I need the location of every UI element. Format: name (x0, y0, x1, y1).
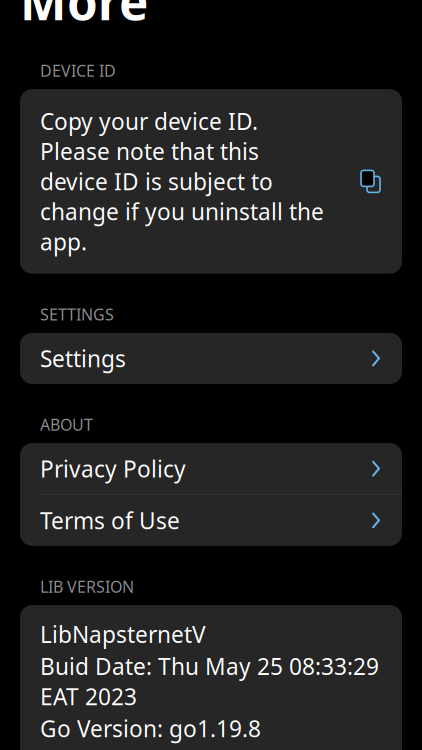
staticText: LibNapsternetV (40, 619, 206, 649)
staticText: ABOUT (40, 414, 93, 435)
button[interactable]: Privacy Policy (20, 443, 402, 494)
staticText: More (20, 0, 148, 34)
staticText: Copy your device ID. Please note that th… (40, 106, 324, 257)
staticText: Terms of Use (40, 505, 180, 535)
button[interactable]: Settings (20, 333, 402, 384)
staticText: LIB VERSION (40, 576, 134, 597)
staticText: Privacy Policy (40, 454, 186, 484)
staticText: SETTINGS (40, 304, 114, 325)
button[interactable]: Terms of Use (20, 495, 402, 546)
staticText: Settings (40, 343, 126, 373)
button[interactable]: Copy your device ID. Please note that th… (20, 89, 402, 274)
staticText: Go Version: go1.19.8 (40, 713, 261, 743)
staticText: Buid Date: Thu May 25 08:33:29 EAT 2023 (40, 651, 379, 711)
staticText: DEVICE ID (40, 60, 116, 81)
